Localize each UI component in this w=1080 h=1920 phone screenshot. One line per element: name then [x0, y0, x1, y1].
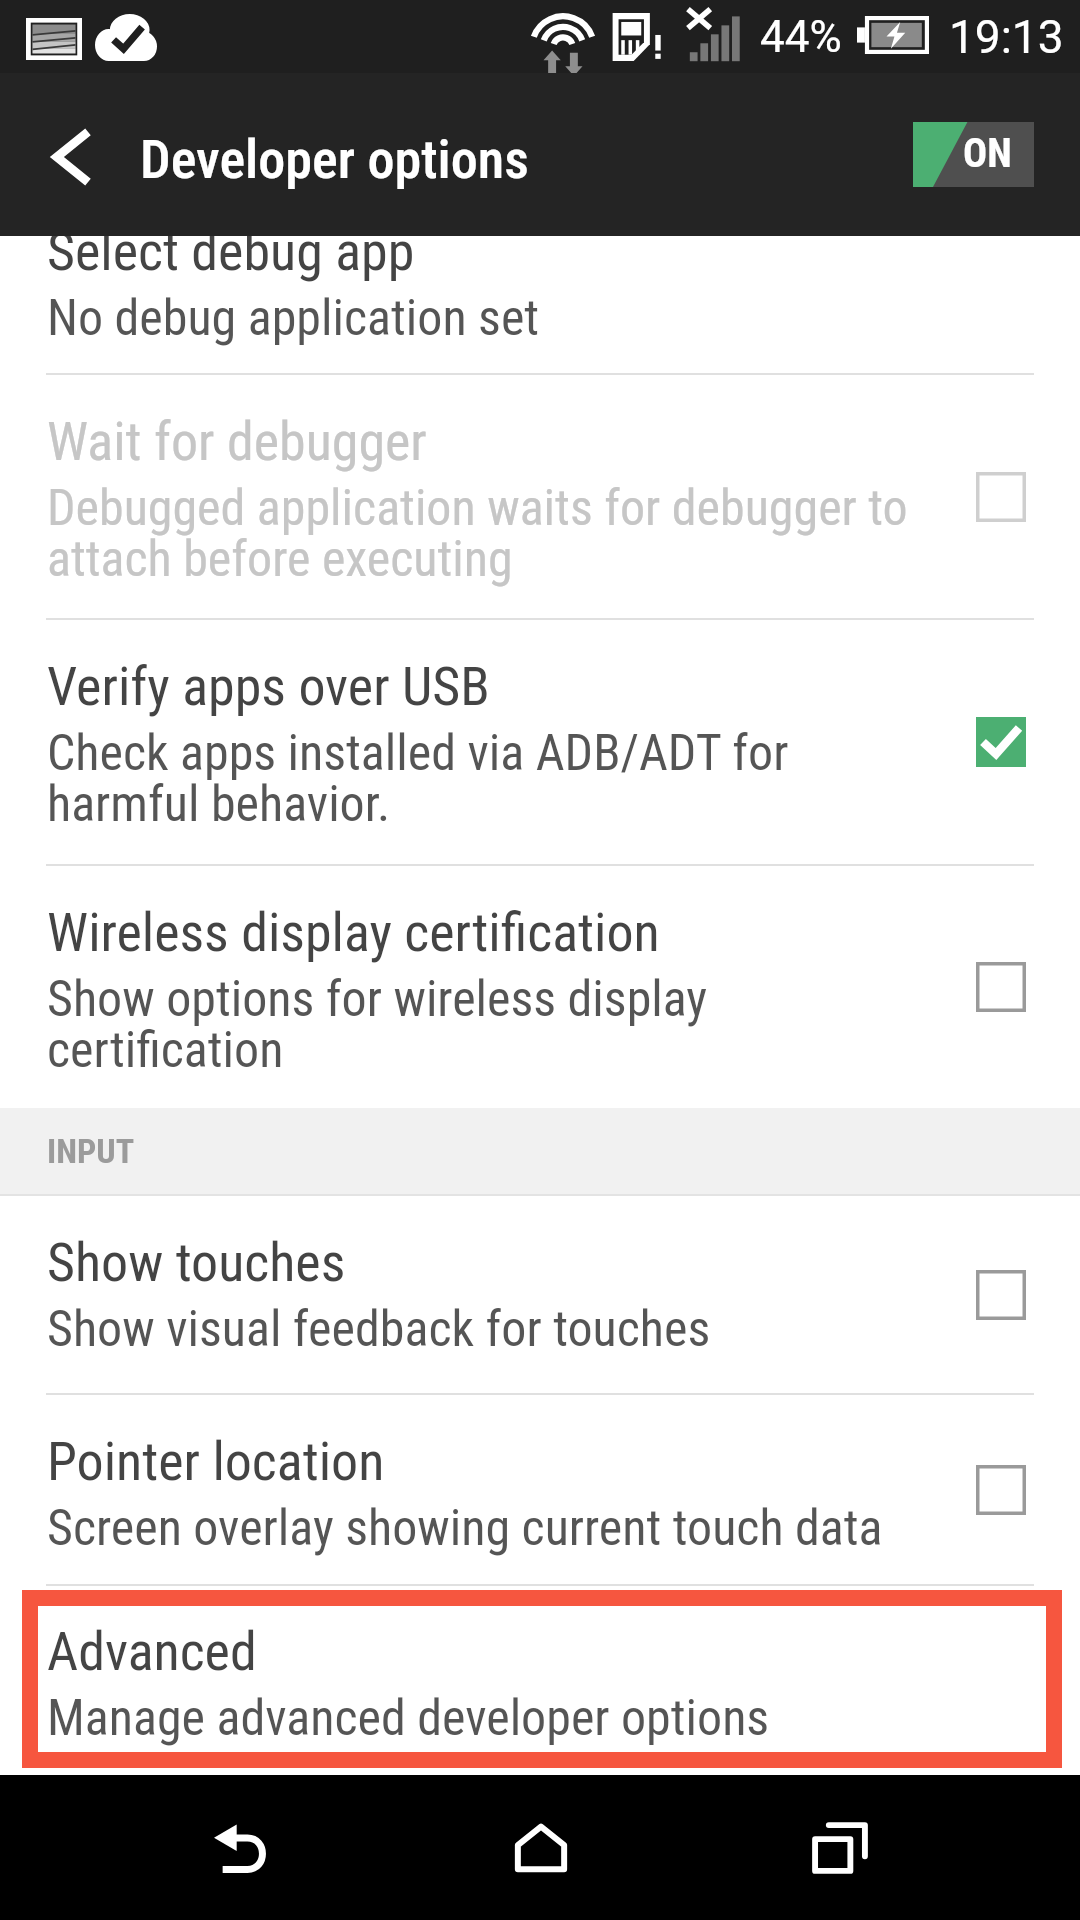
staticText: Debugged application waits for debugger …	[47, 479, 908, 589]
button[interactable]: Advanced	[22, 1590, 1062, 1768]
staticText: Pointer location	[47, 1430, 385, 1493]
staticText: Show options for wireless display certif…	[47, 970, 708, 1080]
staticText: Wireless display certification	[47, 901, 660, 964]
staticText: Wait for debugger	[47, 410, 427, 473]
button[interactable]: Wireless display certification	[0, 866, 1080, 1108]
staticText: Developer options	[140, 128, 529, 191]
button[interactable]: Home	[391, 1775, 690, 1920]
staticText: Verify apps over USB	[47, 655, 490, 718]
button[interactable]: Developer options on	[913, 122, 1034, 187]
staticText: 44%	[760, 11, 842, 63]
button[interactable]: Back	[91, 1775, 391, 1920]
staticText: Screen overlay showing current touch dat…	[47, 1499, 883, 1558]
staticText: 19:13	[949, 10, 1064, 64]
staticText: ON	[963, 130, 1012, 177]
button[interactable]: Pointer location	[0, 1395, 1080, 1584]
staticText: Manage advanced developer options	[47, 1689, 770, 1748]
button[interactable]: Show touches	[0, 1196, 1080, 1393]
staticText: Check apps installed via ADB/ADT for har…	[47, 724, 789, 834]
staticText: Show touches	[47, 1231, 346, 1294]
button[interactable]: Navigate up	[0, 73, 140, 236]
button[interactable]: Verify apps over USB	[0, 620, 1080, 864]
button[interactable]: Wait for debugger	[0, 375, 1080, 618]
button[interactable]: Select debug app	[0, 236, 1080, 373]
staticText: Select debug app	[47, 236, 415, 283]
staticText: Advanced	[47, 1620, 257, 1683]
button[interactable]: Recent apps	[690, 1775, 989, 1920]
staticText: INPUT	[47, 1131, 135, 1171]
staticText: Show visual feedback for touches	[47, 1300, 711, 1359]
staticText: No debug application set	[47, 289, 540, 348]
